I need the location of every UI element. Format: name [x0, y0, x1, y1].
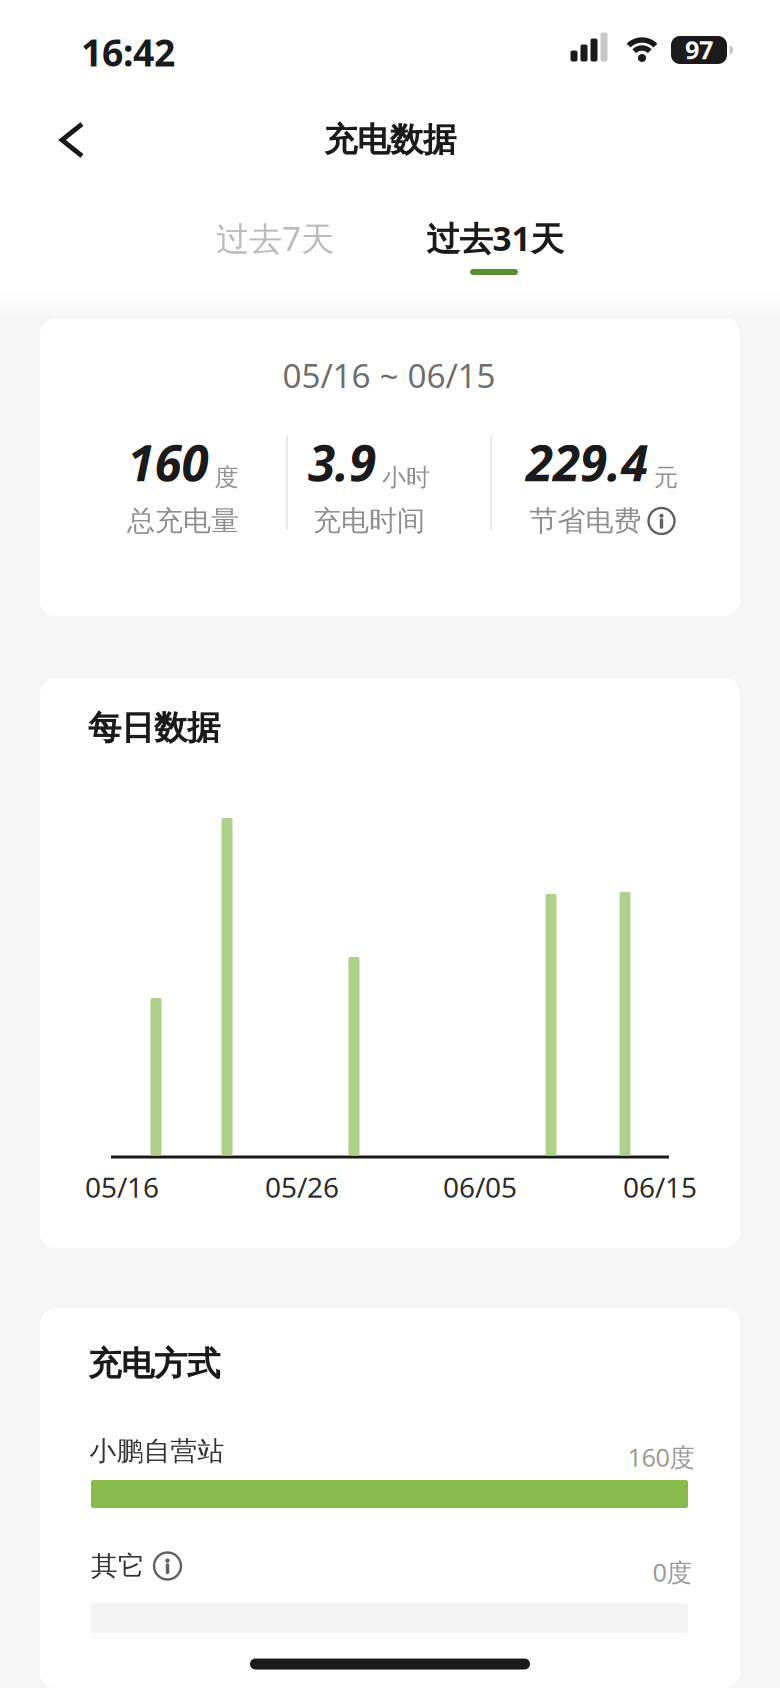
staticText: 充电时间	[313, 503, 425, 539]
staticText: 元	[654, 462, 678, 493]
staticText: 3.9	[308, 428, 376, 496]
staticText: 06/05	[443, 1168, 517, 1206]
staticText: 0度	[652, 1555, 691, 1589]
staticText: 160	[127, 428, 208, 496]
button[interactable]	[44, 112, 100, 168]
staticText: 160度	[627, 1440, 694, 1474]
staticText: 05/16	[85, 1168, 159, 1206]
button[interactable]	[154, 1552, 181, 1579]
staticText: 其它	[91, 1549, 145, 1583]
staticText: 229.4	[526, 428, 648, 496]
staticText: 16:42	[81, 27, 175, 77]
button[interactable]	[648, 508, 674, 534]
staticText: 充电方式	[88, 1343, 220, 1385]
button[interactable]: 过去31天	[400, 205, 590, 271]
staticText: 每日数据	[88, 707, 220, 749]
button[interactable]: 过去7天	[185, 205, 365, 271]
staticText: 充电数据	[324, 119, 456, 161]
staticText: 过去31天	[426, 215, 563, 261]
staticText: 过去7天	[216, 215, 334, 261]
staticText: 06/15	[623, 1168, 697, 1206]
staticText: 节省电费	[529, 503, 641, 539]
staticText: 度	[214, 462, 238, 493]
staticText: 97	[685, 32, 713, 67]
staticText: 05/26	[265, 1168, 339, 1206]
staticText: 小鹏自营站	[89, 1434, 224, 1468]
staticText: 总充电量	[127, 503, 239, 539]
staticText: 小时	[382, 462, 430, 493]
staticText: 05/16 ~ 06/15	[282, 352, 495, 398]
